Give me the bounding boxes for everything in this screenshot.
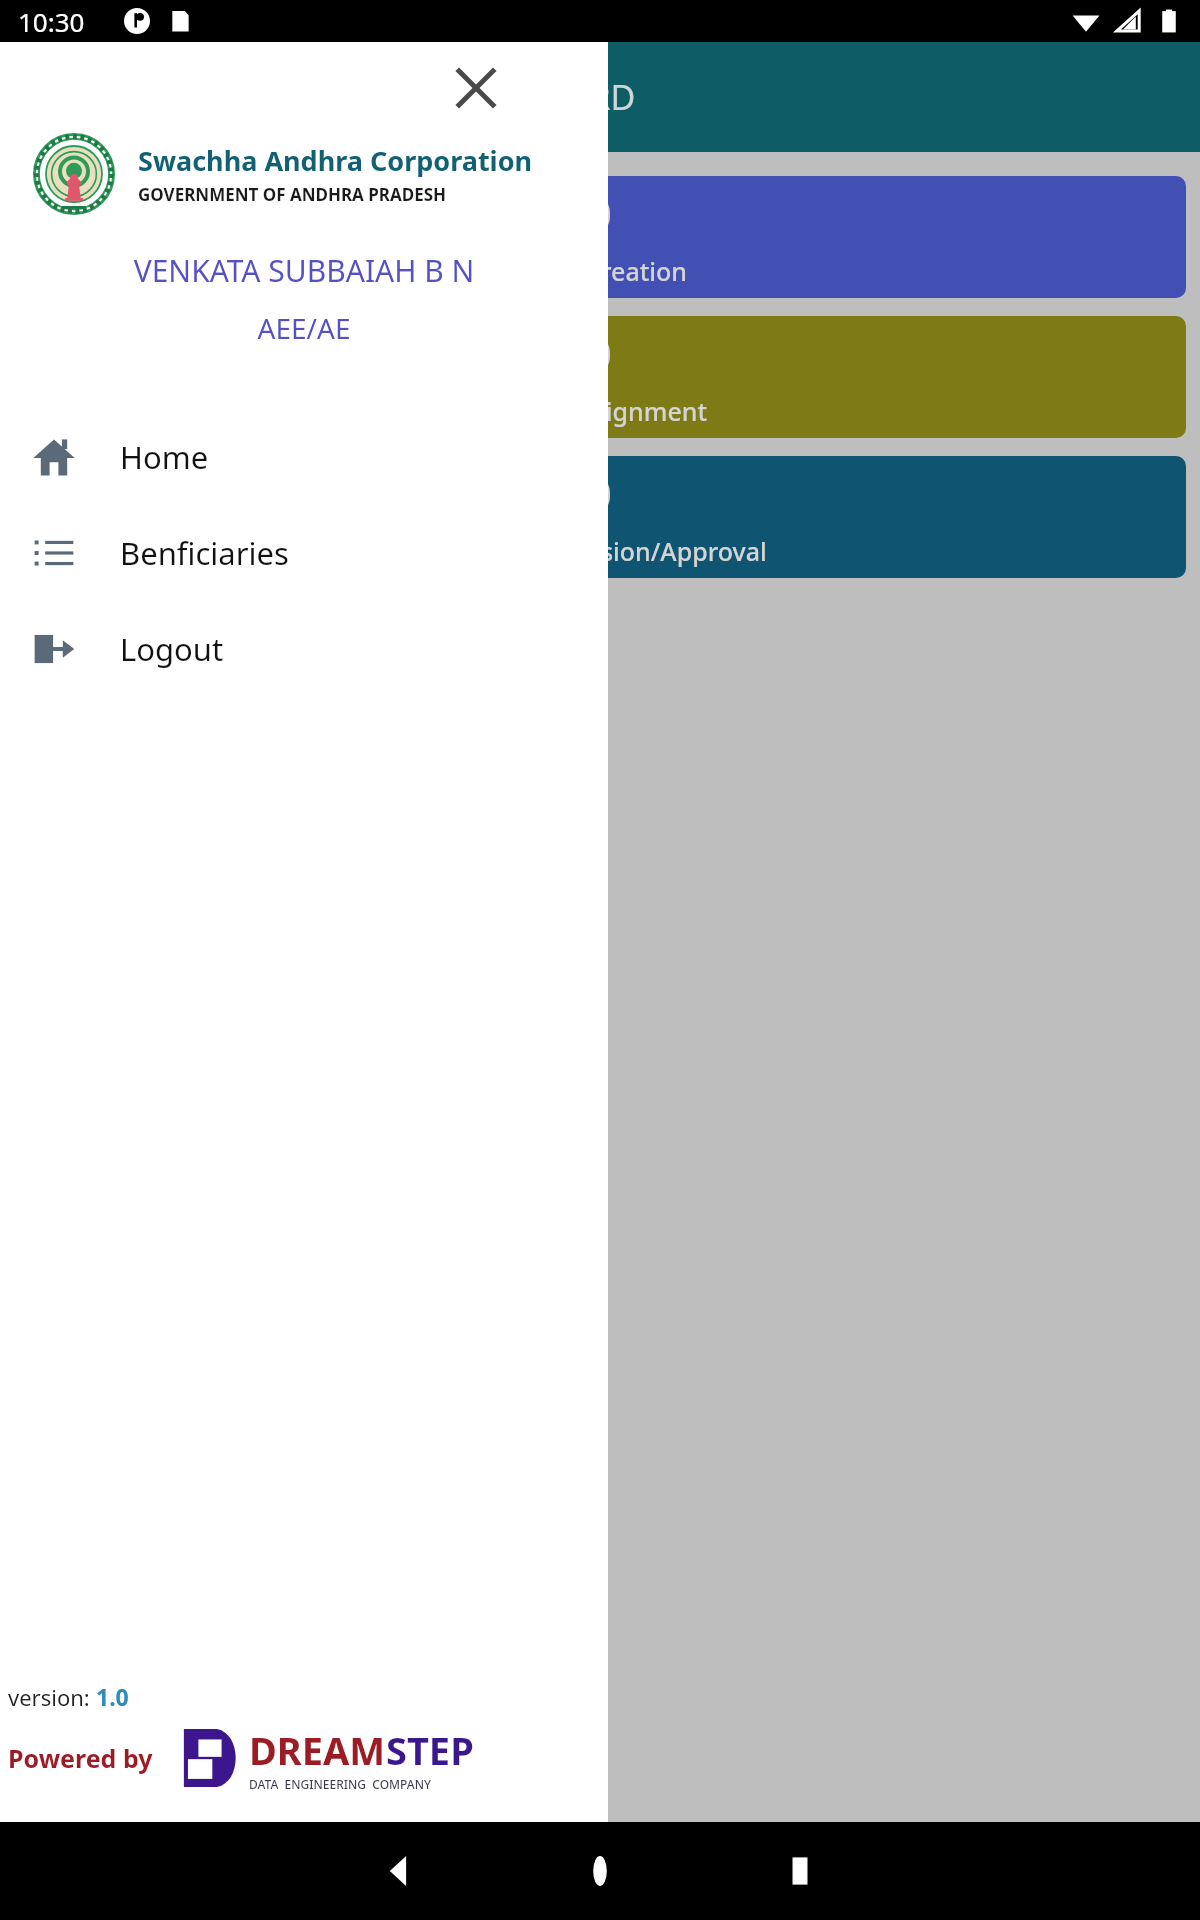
staticText: DREAM	[249, 1724, 386, 1776]
staticText: Home	[120, 436, 209, 478]
staticText: Salary Submission/Approval	[434, 534, 767, 568]
button[interactable]: Close navigation drawer	[444, 56, 508, 120]
button[interactable]: Home	[565, 1836, 635, 1906]
staticText: VENKATA SUBBAIAH B N	[0, 250, 608, 291]
button[interactable]: 0	[14, 316, 1186, 438]
staticText: 0	[589, 326, 612, 380]
staticText: Powered by	[8, 1741, 153, 1775]
staticText: DASHBOARD	[430, 74, 636, 120]
button[interactable]: Logout	[0, 601, 608, 697]
staticText: GOVERNMENT OF ANDHRA PRADESH	[138, 183, 447, 206]
button[interactable]: Recent apps	[765, 1836, 835, 1906]
staticText: Asset Assignment	[494, 394, 707, 428]
staticText: 0	[589, 466, 612, 520]
button[interactable]: Benficiaries	[0, 505, 608, 601]
staticText: STEP	[386, 1724, 474, 1776]
staticText: AEE/AE	[0, 309, 608, 347]
staticText: version:	[8, 1682, 96, 1712]
staticText: Swachha Andhra Corporation	[138, 142, 533, 179]
button[interactable]: 0	[14, 456, 1186, 578]
staticText: 0	[589, 186, 612, 240]
button[interactable]: Home	[0, 409, 608, 505]
button[interactable]: Back	[365, 1836, 435, 1906]
staticText: Asset Creation	[514, 254, 687, 288]
staticText: 1.0	[96, 1681, 129, 1712]
button[interactable]: 0	[14, 176, 1186, 298]
staticText: Logout	[120, 628, 224, 670]
staticText: Benficiaries	[120, 532, 289, 574]
staticText: 10:30	[18, 4, 85, 39]
staticText: DATA ENGINEERING COMPANY	[249, 1776, 432, 1792]
